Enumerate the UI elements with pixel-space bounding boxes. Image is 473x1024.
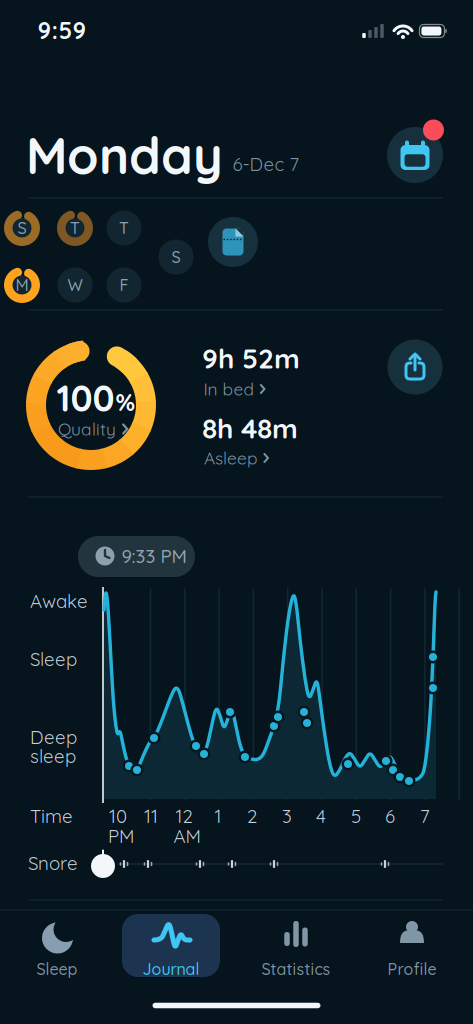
staticText: 8h 48m [202, 411, 298, 445]
staticText: In bed [203, 378, 254, 399]
staticText: Profile [387, 959, 436, 979]
staticText: Deep [30, 726, 77, 748]
staticText: 100 [56, 376, 114, 420]
staticText: Sleep [30, 648, 77, 670]
button[interactable] [0, 0, 473, 1024]
staticText: Awake [30, 590, 88, 612]
staticText: M [15, 275, 28, 295]
staticText: 2 [247, 805, 257, 827]
staticText: 5 [351, 805, 361, 827]
staticText: 6 [385, 805, 395, 827]
staticText: 9h 52m [202, 341, 300, 375]
button[interactable]: F [0, 0, 473, 1024]
staticText: 12 [175, 805, 192, 827]
staticText: S [17, 218, 26, 238]
button[interactable]: T [0, 0, 473, 1024]
button[interactable]: Sleep [0, 0, 473, 1024]
staticText: 3 [282, 805, 292, 827]
button[interactable]: T [0, 0, 473, 1024]
staticText: Snore [28, 852, 78, 874]
staticText: 4 [316, 805, 326, 827]
staticText: 11 [144, 805, 158, 827]
staticText: T [119, 218, 129, 238]
button[interactable]: S [0, 0, 473, 1024]
button[interactable] [0, 0, 473, 1024]
staticText: sleep [30, 745, 76, 767]
staticText: S [171, 247, 180, 267]
button[interactable]: Profile [0, 0, 473, 1024]
staticText: Time [30, 805, 73, 827]
button[interactable] [0, 0, 473, 1024]
staticText: PM [108, 825, 134, 847]
staticText: AM [173, 825, 200, 847]
button[interactable]: Journal [0, 0, 473, 1024]
staticText: 9:59 [37, 15, 86, 45]
button[interactable]: In bed [0, 0, 473, 1024]
button[interactable]: 9:33 PM [0, 0, 473, 1024]
staticText: Monday [26, 124, 223, 186]
button[interactable]: 100 [0, 0, 473, 1024]
staticText: Quality [58, 418, 116, 439]
staticText: 6-Dec 7 [232, 153, 299, 175]
staticText: Asleep [204, 447, 258, 468]
button[interactable]: W [0, 0, 473, 1024]
button[interactable] [0, 0, 473, 1024]
staticText: Statistics [261, 959, 330, 979]
staticText: T [70, 218, 80, 238]
staticText: Sleep [36, 959, 77, 979]
button[interactable]: Asleep [0, 0, 473, 1024]
button[interactable]: Statistics [0, 0, 473, 1024]
button[interactable]: S [0, 0, 473, 1024]
staticText: 7 [420, 805, 430, 827]
staticText: 9:33 PM [121, 545, 186, 567]
staticText: 1 [214, 805, 221, 827]
staticText: F [119, 275, 128, 295]
staticText: Journal [142, 959, 199, 979]
button[interactable]: M [0, 0, 473, 1024]
staticText: 10 [109, 805, 127, 827]
staticText: % [115, 387, 135, 417]
staticText: W [67, 275, 82, 295]
